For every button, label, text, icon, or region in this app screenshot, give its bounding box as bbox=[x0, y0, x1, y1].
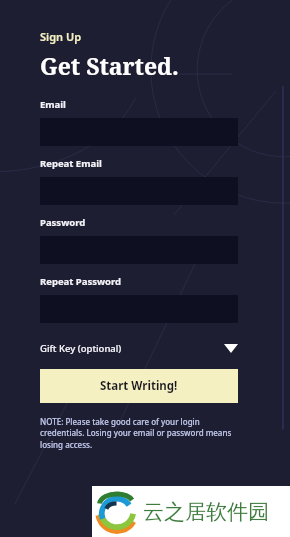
staticText: Email bbox=[40, 98, 66, 111]
staticText: Start Writing! bbox=[100, 378, 178, 394]
staticText: Repeat Password bbox=[40, 275, 122, 288]
staticText: Password bbox=[40, 216, 86, 229]
staticText: Sign Up bbox=[40, 29, 82, 44]
staticText: Gift Key (optional) bbox=[40, 342, 122, 355]
staticText: Repeat Email bbox=[40, 157, 102, 170]
staticText: 云之居软件园 bbox=[143, 499, 269, 525]
button[interactable]: Gift Key (optional) bbox=[40, 337, 238, 359]
staticText: Get Started. bbox=[40, 50, 179, 81]
button[interactable]: Start Writing! bbox=[40, 369, 238, 403]
staticText: NOTE: Please take good care of your logi… bbox=[40, 416, 238, 451]
